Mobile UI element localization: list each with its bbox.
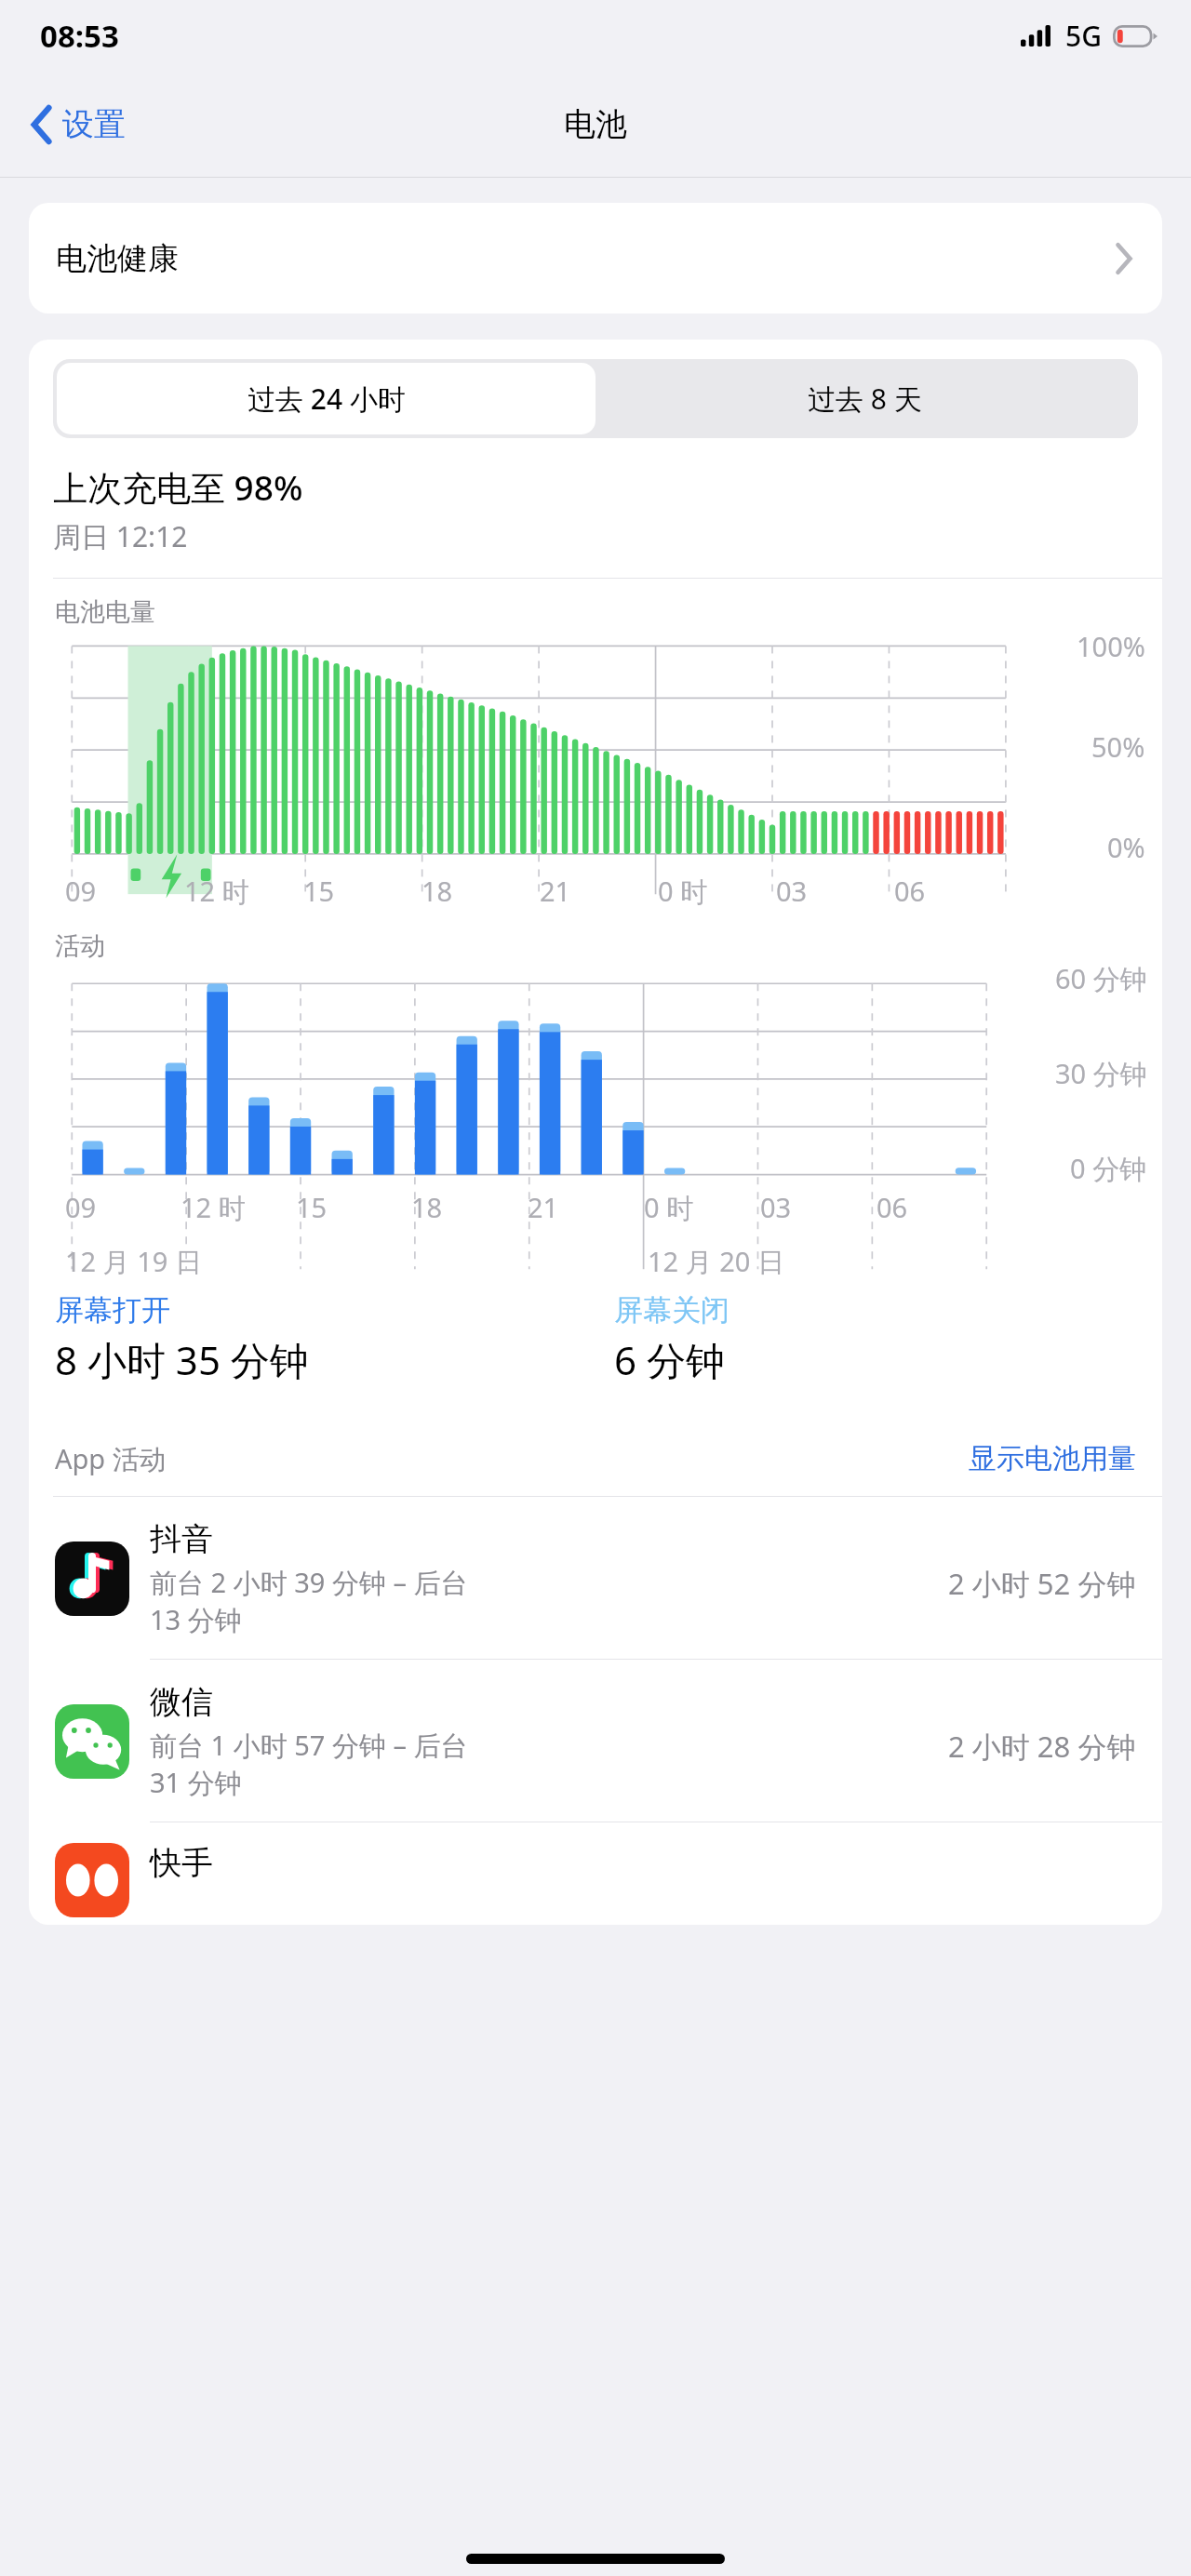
staticText: 2 小时 28 分钟 xyxy=(948,1727,1136,1766)
staticText: 过去 24 小时 xyxy=(248,380,406,418)
button[interactable]: 抖音 xyxy=(29,1497,1162,1659)
staticText: 12 月 19 日 xyxy=(65,1243,202,1280)
staticText: 60 分钟 xyxy=(1055,960,1147,997)
staticText: 21 xyxy=(540,873,571,909)
button[interactable]: 显示电池用量 xyxy=(943,1434,1162,1484)
staticText: 上次充电至 98% xyxy=(53,463,303,511)
staticText: 13 分钟 xyxy=(150,1601,242,1638)
staticText: 2 小时 52 分钟 xyxy=(948,1564,1136,1603)
staticText: 12 时 xyxy=(184,873,249,910)
staticText: 前台 1 小时 57 分钟 – 后台 xyxy=(150,1727,468,1764)
staticText: 设置 xyxy=(62,104,126,144)
staticText: 微信 xyxy=(150,1682,213,1722)
button[interactable]: 设置 xyxy=(22,97,135,152)
staticText: 电池 xyxy=(564,104,627,144)
staticText: 50% xyxy=(1091,728,1145,765)
staticText: 活动 xyxy=(55,930,105,962)
staticText: 03 xyxy=(760,1189,792,1225)
staticText: 09 xyxy=(65,873,97,909)
staticText: 06 xyxy=(894,873,926,909)
staticText: 12 月 20 日 xyxy=(648,1243,784,1280)
staticText: 8 小时 35 分钟 xyxy=(55,1333,309,1386)
staticText: 08:53 xyxy=(40,15,119,57)
staticText: 18 xyxy=(411,1189,443,1225)
staticText: 0% xyxy=(1107,829,1145,865)
staticText: 周日 12:12 xyxy=(53,517,188,555)
staticText: 100% xyxy=(1077,628,1145,664)
button[interactable]: 电池健康 xyxy=(29,203,1162,314)
staticText: 抖音 xyxy=(150,1519,213,1559)
staticText: 09 xyxy=(65,1189,97,1225)
staticText: 显示电池用量 xyxy=(969,1441,1136,1476)
staticText: 15 xyxy=(303,873,335,909)
staticText: 屏幕关闭 xyxy=(614,1292,729,1328)
staticText: 30 分钟 xyxy=(1055,1055,1147,1092)
staticText: 0 时 xyxy=(644,1189,694,1226)
staticText: 6 分钟 xyxy=(614,1333,725,1386)
staticText: 0 分钟 xyxy=(1070,1150,1147,1187)
staticText: 过去 8 天 xyxy=(808,380,922,418)
staticText: 电池电量 xyxy=(55,596,155,628)
button[interactable]: 过去 8 天 xyxy=(595,363,1134,434)
staticText: 前台 2 小时 39 分钟 – 后台 xyxy=(150,1564,468,1601)
staticText: App 活动 xyxy=(55,1440,167,1477)
staticText: 21 xyxy=(528,1189,559,1225)
staticText: 03 xyxy=(776,873,808,909)
staticText: 5G xyxy=(1065,17,1102,55)
staticText: 0 时 xyxy=(658,873,708,910)
button[interactable]: 过去 24 小时 xyxy=(57,363,595,434)
staticText: 06 xyxy=(877,1189,908,1225)
staticText: 31 分钟 xyxy=(150,1764,242,1801)
other: 电池健康 xyxy=(1116,244,1132,274)
staticText: 15 xyxy=(296,1189,328,1225)
staticText: 电池健康 xyxy=(56,239,179,278)
staticText: 屏幕打开 xyxy=(55,1292,170,1328)
button[interactable]: 微信 xyxy=(29,1660,1162,1822)
staticText: 快手 xyxy=(150,1843,213,1883)
staticText: 12 时 xyxy=(181,1189,246,1226)
button[interactable]: 快手 xyxy=(29,1822,1162,1925)
staticText: 18 xyxy=(422,873,453,909)
